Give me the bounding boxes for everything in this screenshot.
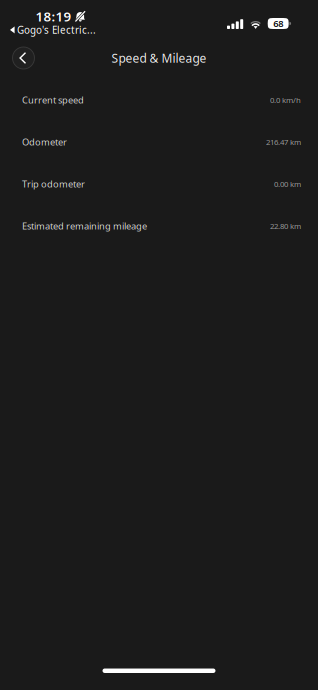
staticText: 0.0 km/h bbox=[270, 95, 301, 105]
staticText: Gogo's Electric... bbox=[17, 23, 96, 37]
staticText: Estimated remaining mileage bbox=[22, 220, 147, 232]
button[interactable]: Trip odometer bbox=[0, 163, 318, 205]
staticText: 22.80 km bbox=[270, 221, 301, 231]
staticText: 18:19 bbox=[35, 7, 71, 25]
staticText: Odometer bbox=[22, 136, 67, 148]
button[interactable]: Odometer bbox=[0, 121, 318, 163]
staticText: Trip odometer bbox=[22, 178, 85, 190]
staticText: 0.00 km bbox=[274, 179, 301, 189]
staticText: Current speed bbox=[22, 94, 84, 106]
button[interactable]: Current speed bbox=[0, 79, 318, 121]
staticText: 68 bbox=[273, 17, 283, 30]
staticText: Speed & Mileage bbox=[111, 50, 206, 66]
staticText: 216.47 km bbox=[266, 137, 301, 147]
button[interactable]: Estimated remaining mileage bbox=[0, 205, 318, 247]
button[interactable]: Back bbox=[8, 43, 38, 73]
